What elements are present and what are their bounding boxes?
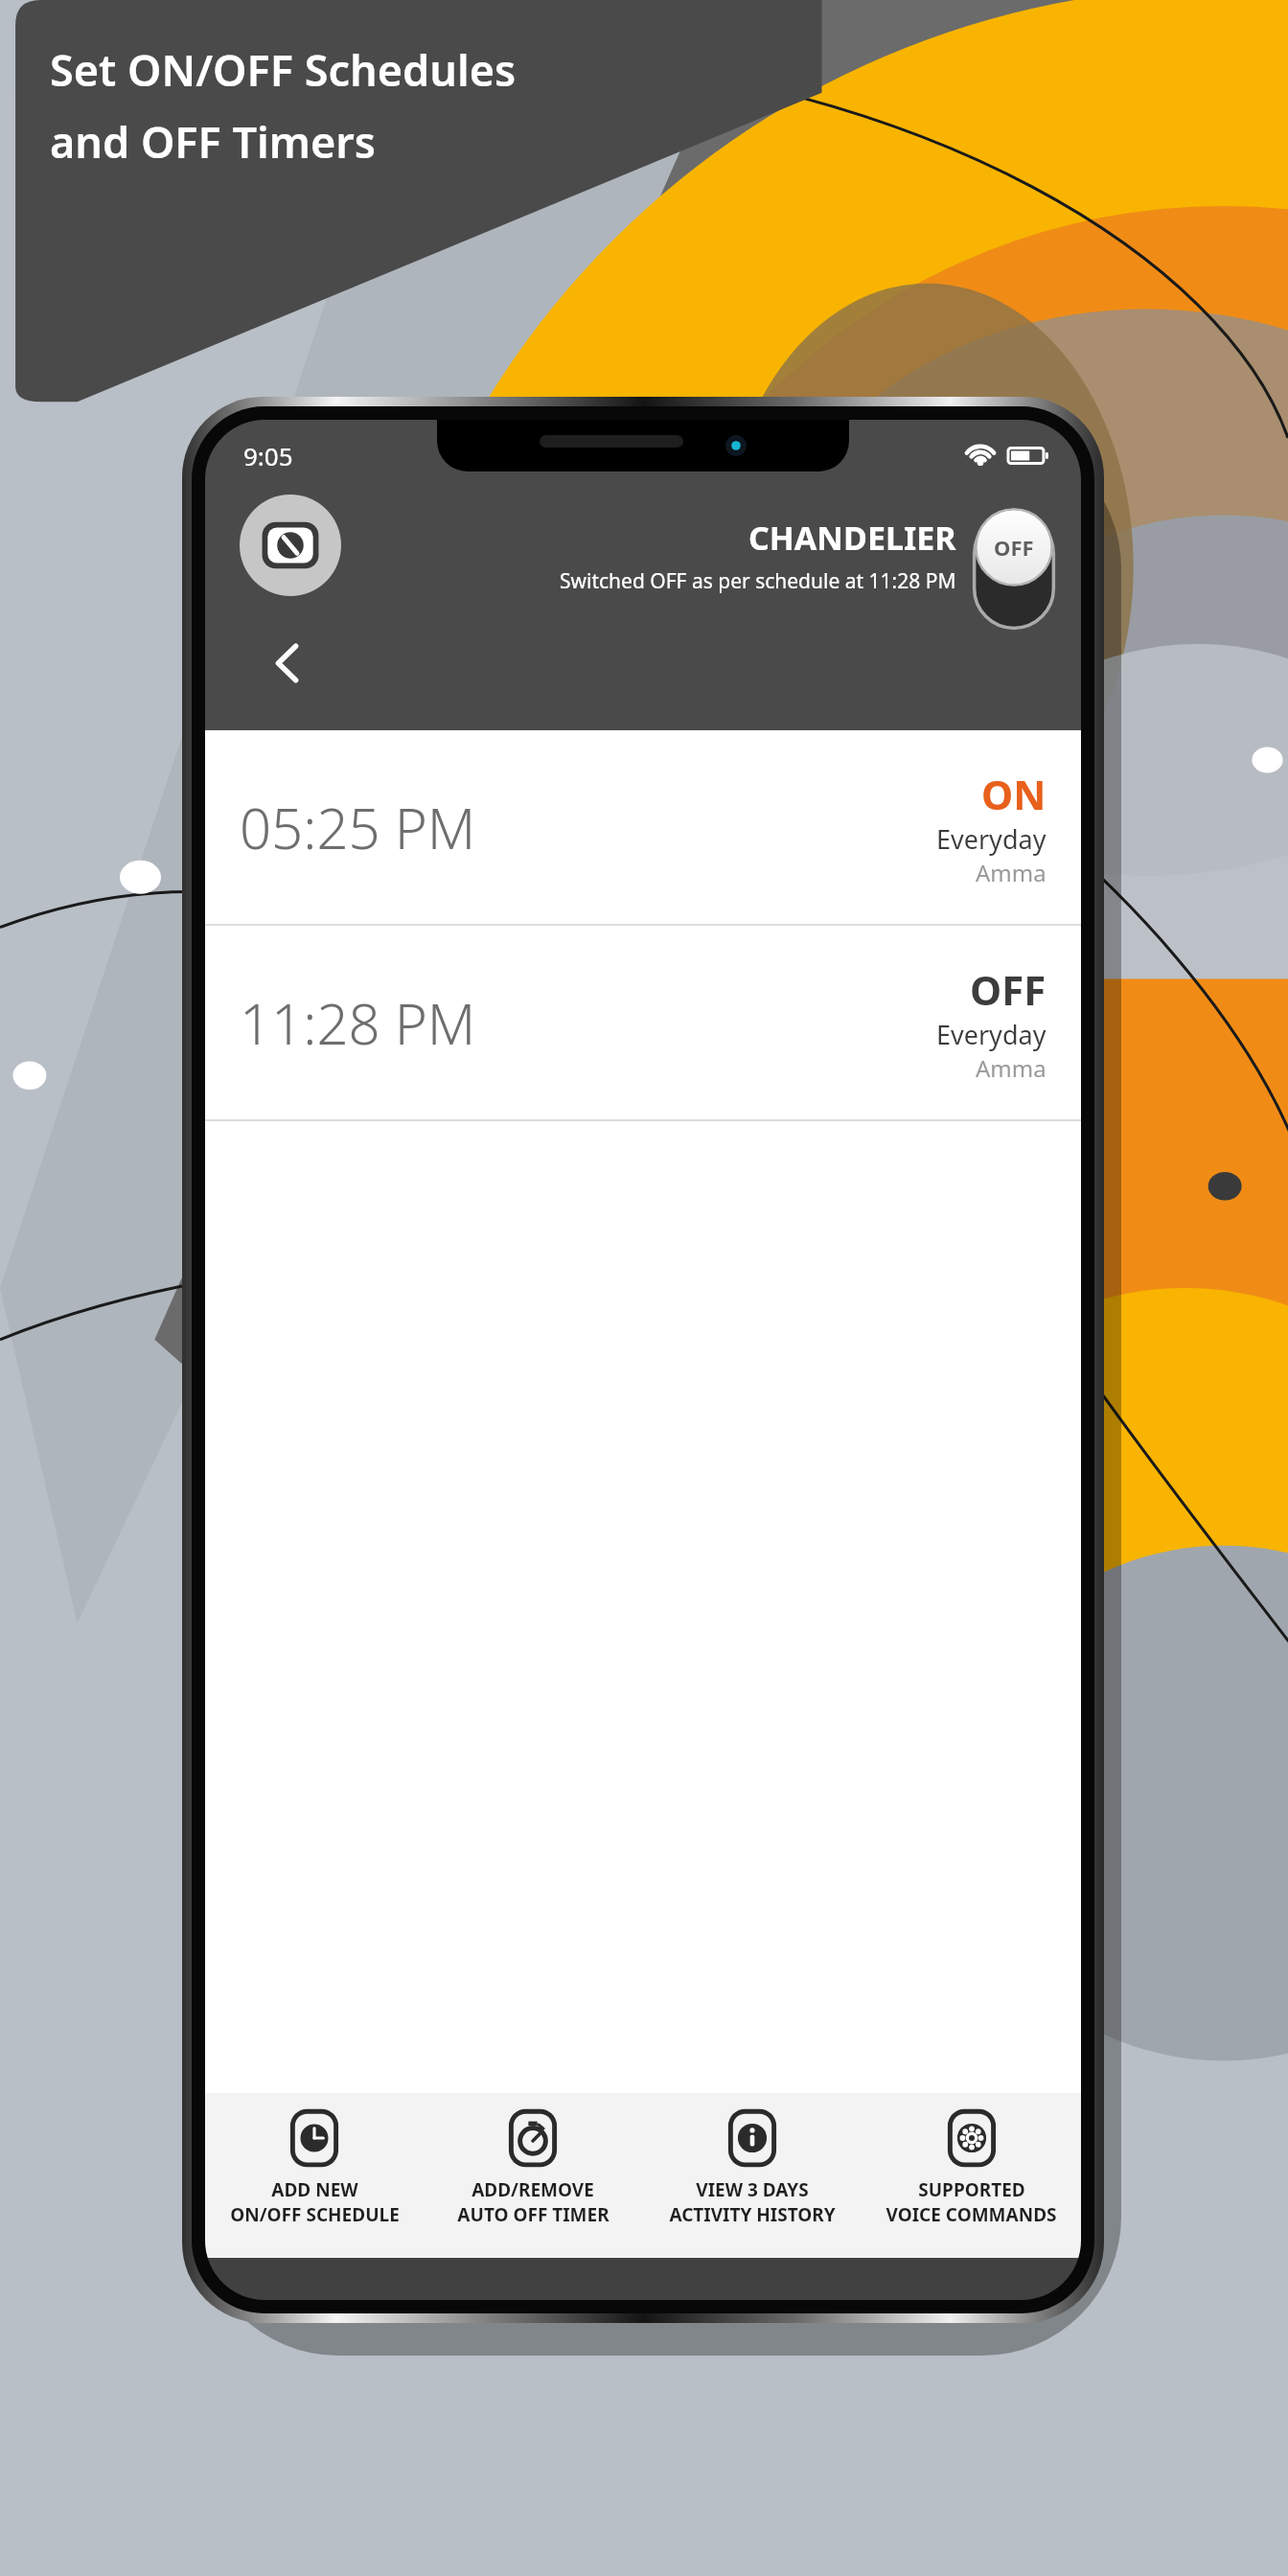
staticText: Set ON/OFF Schedules xyxy=(50,40,517,99)
staticText: Switched OFF as per schedule at 11:28 PM xyxy=(560,567,956,595)
staticText: Amma xyxy=(976,857,1046,888)
staticText: Amma xyxy=(976,1052,1046,1084)
staticText: ADD/REMOVE xyxy=(471,2177,594,2202)
staticText: CHANDELIER xyxy=(748,516,956,560)
button[interactable]: Back xyxy=(245,621,330,705)
staticText: 05:25 PM xyxy=(240,790,476,865)
staticText: ON xyxy=(981,767,1046,821)
button[interactable]: ADD/REMOVE xyxy=(424,2093,642,2258)
button[interactable]: ADD NEW xyxy=(205,2093,424,2258)
staticText: AUTO OFF TIMER xyxy=(457,2202,609,2227)
staticText: ACTIVITY HISTORY xyxy=(669,2202,836,2227)
staticText: VOICE COMMANDS xyxy=(885,2202,1057,2227)
staticText: ON/OFF SCHEDULE xyxy=(230,2202,400,2227)
staticText: Everyday xyxy=(936,1017,1046,1052)
staticText: and OFF Timers xyxy=(50,112,377,171)
staticText: SUPPORTED xyxy=(918,2177,1025,2202)
staticText: 11:28 PM xyxy=(240,985,476,1061)
staticText: Everyday xyxy=(936,821,1046,857)
staticText: OFF xyxy=(994,533,1034,562)
staticText: 9:05 xyxy=(243,439,293,472)
button[interactable]: 11:28 PM xyxy=(205,926,1081,1119)
button[interactable]: VIEW 3 DAYS xyxy=(642,2093,862,2258)
staticText: VIEW 3 DAYS xyxy=(696,2177,809,2202)
button[interactable]: SUPPORTED xyxy=(862,2093,1081,2258)
button[interactable]: Power toggle, OFF xyxy=(972,508,1056,631)
button[interactable]: Device xyxy=(240,494,341,596)
staticText: ADD NEW xyxy=(271,2177,358,2202)
button[interactable]: 05:25 PM xyxy=(205,730,1081,924)
staticText: OFF xyxy=(970,962,1046,1017)
